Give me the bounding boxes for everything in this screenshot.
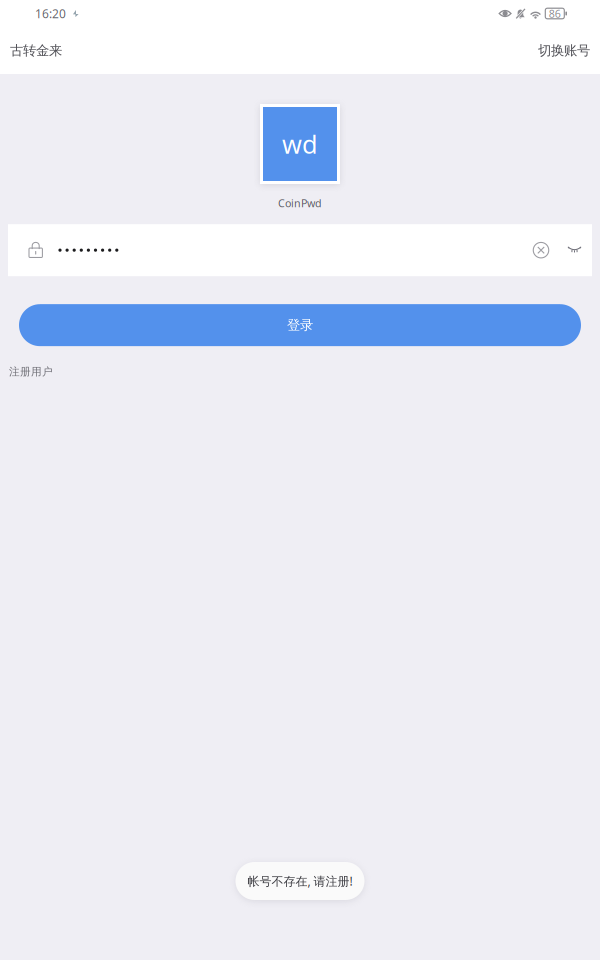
staticText: 登录 — [287, 317, 313, 333]
staticText: CoinPwd — [278, 196, 322, 210]
staticText: 古转金来 — [10, 42, 62, 59]
button[interactable]: Clear password — [526, 235, 556, 265]
button[interactable]: 登录 — [19, 304, 581, 346]
staticText: 16:20 — [35, 5, 66, 21]
button[interactable]: 切换账号 — [538, 32, 600, 69]
staticText: 注册用户 — [9, 365, 53, 378]
staticText: 帐号不存在, 请注册! — [247, 873, 352, 889]
staticText: 86 — [549, 6, 561, 21]
staticText: wd — [282, 127, 318, 161]
button[interactable]: 注册用户 — [0, 360, 53, 383]
staticText: 切换账号 — [538, 42, 590, 59]
button[interactable]: Show password — [561, 239, 588, 261]
